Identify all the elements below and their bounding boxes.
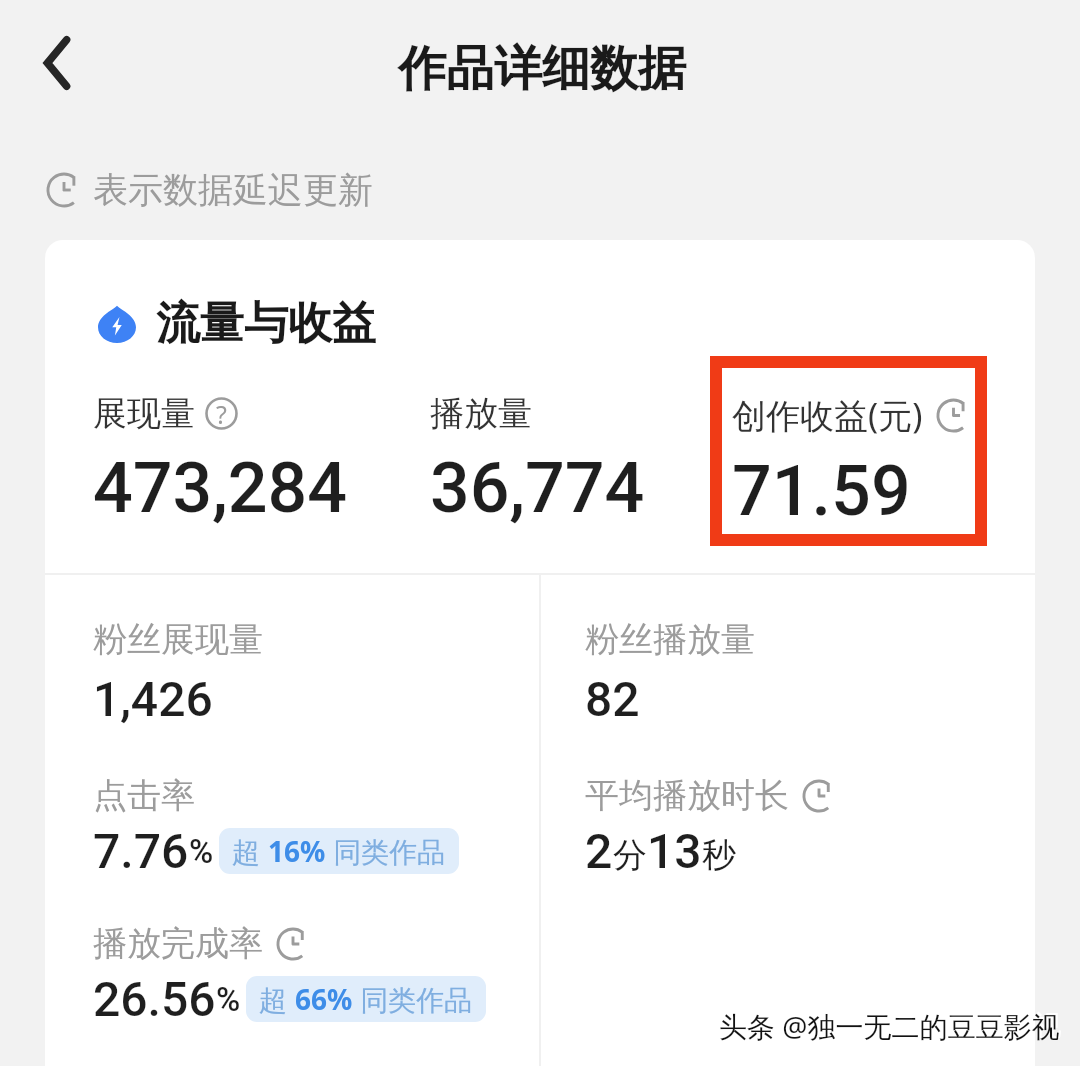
staticText: 头条 @独一无二的豆豆影视 bbox=[719, 1007, 1060, 1045]
staticText: 平均播放时长 bbox=[585, 774, 789, 817]
button[interactable]: 粉丝展现量 bbox=[93, 618, 263, 727]
staticText: ? bbox=[216, 397, 227, 430]
staticText: 71.59 bbox=[732, 450, 911, 532]
button[interactable]: Delayed data indicator bbox=[45, 168, 373, 212]
staticText: 16% bbox=[268, 832, 326, 870]
staticText: 26.56 bbox=[93, 971, 216, 1027]
staticText: 同类作品 bbox=[326, 832, 446, 870]
staticText: 分 bbox=[613, 834, 647, 877]
button[interactable]: 播放量 bbox=[430, 392, 645, 529]
staticText: 表示数据延迟更新 bbox=[93, 168, 373, 212]
staticText: 粉丝播放量 bbox=[585, 618, 755, 661]
button[interactable]: Delayed data indicator bbox=[45, 171, 83, 209]
button[interactable]: 平均播放时长 bbox=[585, 774, 837, 879]
staticText: 播放完成率 bbox=[93, 922, 263, 965]
button[interactable]: Average watch time updates with a delay bbox=[801, 778, 837, 814]
staticText: % bbox=[189, 832, 214, 871]
button[interactable]: About impressions bbox=[205, 397, 238, 430]
button[interactable]: Earnings update with a delay bbox=[935, 397, 972, 434]
staticText: 473,284 bbox=[93, 447, 348, 529]
staticText: % bbox=[216, 980, 241, 1019]
staticText: 秒 bbox=[702, 834, 736, 877]
button[interactable]: Back bbox=[14, 20, 100, 106]
button[interactable]: 播放完成率 bbox=[93, 922, 486, 1027]
staticText: 1,426 bbox=[93, 671, 213, 727]
staticText: 2 bbox=[585, 823, 613, 879]
staticText: 粉丝展现量 bbox=[93, 618, 263, 661]
staticText: 7.76 bbox=[93, 823, 189, 879]
staticText: 82 bbox=[585, 671, 640, 727]
staticText: 播放量 bbox=[430, 392, 532, 435]
staticText: 同类作品 bbox=[353, 980, 473, 1018]
button[interactable]: 流量与收益 bbox=[98, 296, 376, 351]
button[interactable]: 粉丝播放量 bbox=[585, 618, 755, 727]
staticText: 点击率 bbox=[93, 774, 195, 817]
staticText: 超 bbox=[259, 980, 295, 1018]
staticText: 36,774 bbox=[430, 447, 645, 529]
button[interactable]: Completion rate updates with a delay bbox=[275, 926, 311, 962]
staticText: 作品详细数据 bbox=[398, 39, 686, 99]
button[interactable]: 创作收益(元) bbox=[732, 392, 972, 532]
button[interactable]: 点击率 bbox=[93, 774, 459, 879]
staticText: 超 bbox=[232, 832, 268, 870]
staticText: 流量与收益 bbox=[156, 296, 376, 351]
button[interactable]: 展现量 bbox=[93, 392, 348, 529]
staticText: 13 bbox=[647, 823, 702, 879]
staticText: 66% bbox=[295, 980, 353, 1018]
staticText: 展现量 bbox=[93, 392, 195, 435]
staticText: 头条 @独一无二的豆豆影视 bbox=[721, 1005, 1062, 1043]
staticText: 创作收益(元) bbox=[732, 392, 923, 438]
